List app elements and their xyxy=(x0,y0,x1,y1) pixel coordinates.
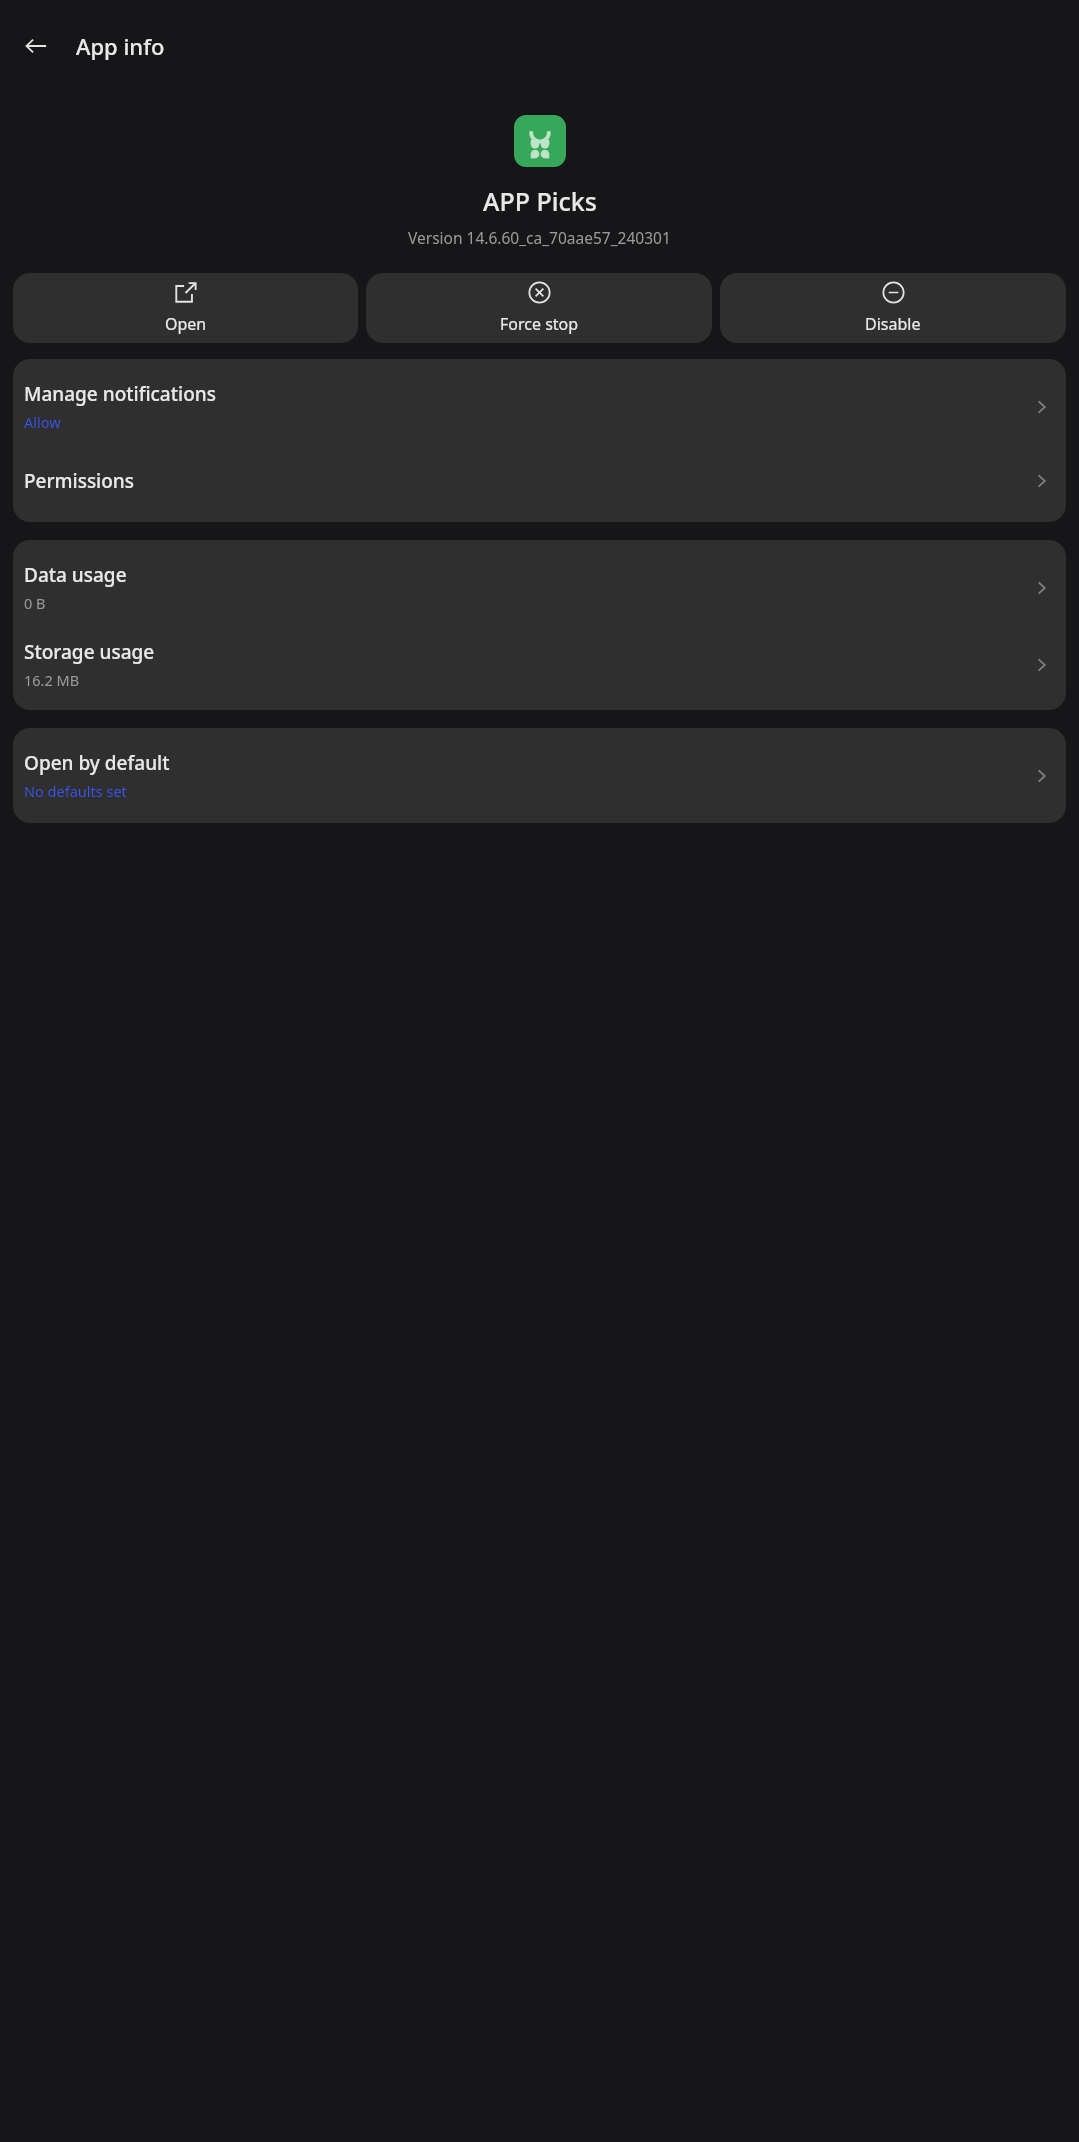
button[interactable]: Back xyxy=(8,18,64,74)
button[interactable]: Data usage xyxy=(13,540,1066,623)
staticText: APP Picks xyxy=(483,184,597,218)
button[interactable]: Permissions xyxy=(13,442,1066,522)
staticText: Permissions xyxy=(24,468,135,494)
staticText: Open xyxy=(165,313,207,335)
staticText: Version 14.6.60_ca_70aae57_240301 xyxy=(408,227,671,248)
button[interactable]: Disable xyxy=(720,273,1066,343)
staticText: Disable xyxy=(865,313,921,335)
button[interactable]: Manage notifications xyxy=(13,359,1066,442)
staticText: Data usage xyxy=(24,562,127,588)
staticText: 0 B xyxy=(24,593,46,613)
staticText: Allow xyxy=(24,412,61,432)
staticText: App info xyxy=(76,31,165,61)
button[interactable]: Storage usage xyxy=(13,623,1066,710)
staticText: Manage notifications xyxy=(24,381,216,407)
staticText: 16.2 MB xyxy=(24,670,80,690)
staticText: No defaults set xyxy=(24,781,127,801)
staticText: Storage usage xyxy=(24,639,155,665)
button[interactable]: Open xyxy=(13,273,358,343)
button[interactable]: Force stop xyxy=(366,273,712,343)
staticText: Open by default xyxy=(24,750,170,776)
staticText: Force stop xyxy=(500,313,579,335)
button[interactable]: Open by default xyxy=(13,728,1066,823)
